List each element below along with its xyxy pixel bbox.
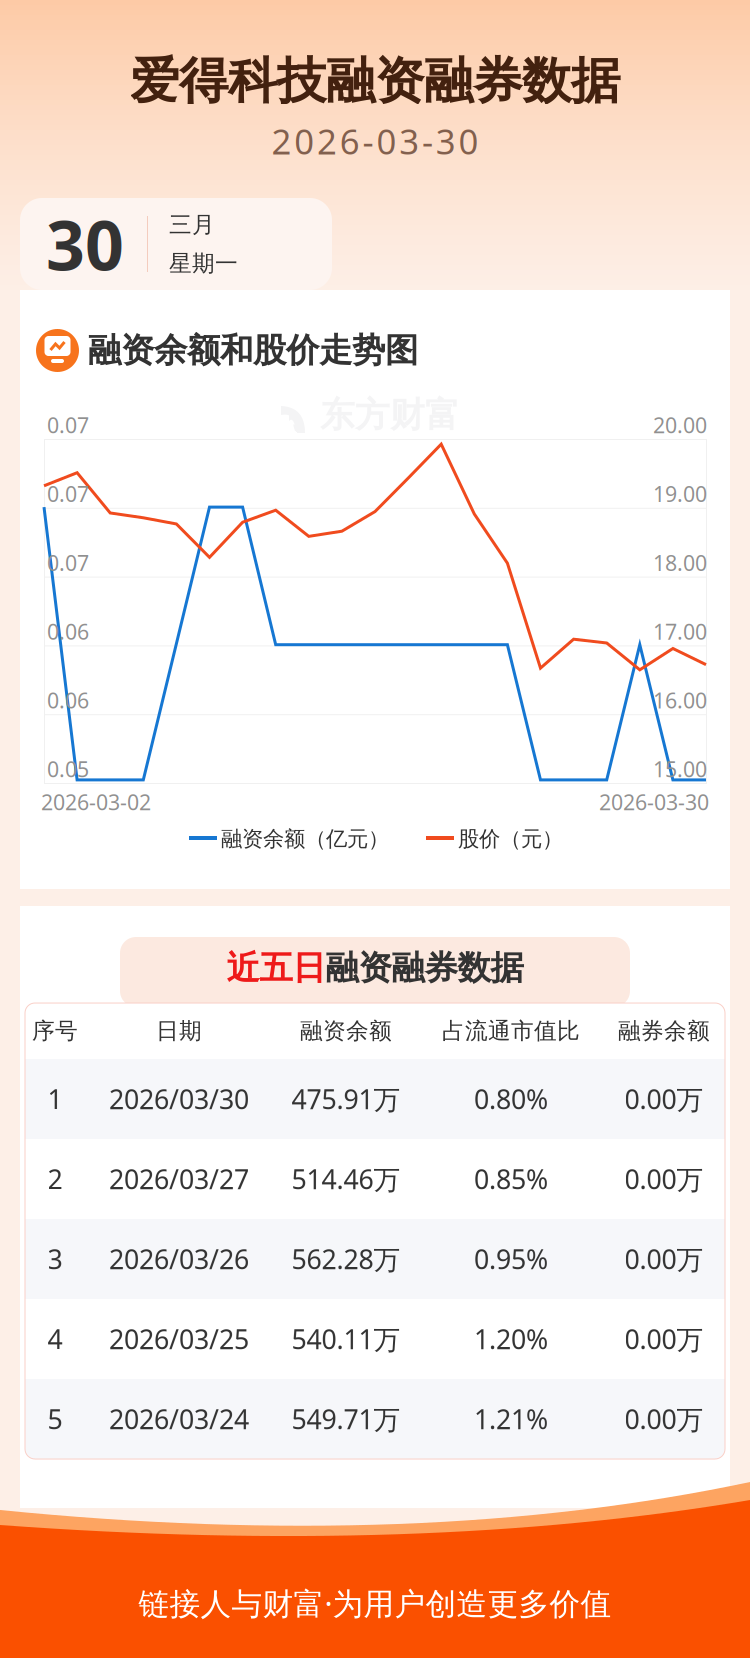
staticText: 19.00 [653,480,707,508]
staticText: 0.00万 [624,1401,703,1437]
staticText: 0.07 [47,411,89,439]
staticText: 540.11万 [291,1321,400,1357]
staticText: 2026/03/25 [109,1321,249,1357]
staticText: 0.00万 [624,1081,703,1117]
staticText: 20.00 [653,411,707,439]
staticText: 2026-03-30 [599,788,709,816]
staticText: 3 [47,1241,62,1277]
staticText: 2026/03/24 [109,1401,249,1437]
staticText: 融资余额 [300,1017,392,1045]
staticText: 0.00万 [624,1321,703,1357]
staticText: 星期一 [169,249,238,277]
staticText: 2026/03/27 [109,1161,249,1197]
staticText: 融资融券数据 [325,947,523,988]
staticText: 1.20% [474,1321,548,1357]
staticText: 2026-03-30 [271,118,479,164]
staticText: 0.05 [47,755,89,783]
staticText: 2 [47,1161,62,1197]
staticText: 融资余额和股价走势图 [88,330,418,371]
staticText: 4 [47,1321,62,1357]
staticText: 0.07 [47,548,89,577]
staticText: 融券余额 [618,1017,710,1045]
staticText: 15.00 [653,755,707,783]
staticText: 股价（元） [458,826,563,852]
staticText: 东方财富 [320,1226,460,1268]
staticText: 爱得科技融资融券数据 [130,51,620,111]
staticText: 2026/03/26 [109,1241,249,1277]
staticText: 三月 [169,211,215,238]
staticText: 占流通市值比 [442,1017,580,1045]
staticText: 0.00万 [624,1161,703,1197]
staticText: 0.95% [474,1241,548,1277]
staticText: 1 [47,1081,62,1117]
staticText: 475.91万 [291,1081,400,1117]
staticText: 2026/03/30 [109,1081,249,1117]
staticText: 0.85% [474,1161,548,1197]
staticText: 日期 [156,1017,202,1045]
staticText: 562.28万 [291,1241,400,1277]
staticText: 549.71万 [291,1401,400,1437]
staticText: 30 [46,199,124,289]
staticText: 17.00 [653,617,707,645]
staticText: 序号 [32,1017,78,1045]
staticText: 链接人与财富·为用户创造更多价值 [138,1583,611,1623]
staticText: 16.00 [653,686,707,714]
staticText: 1.21% [474,1401,548,1437]
staticText: 东方财富 [320,394,460,436]
staticText: 融资余额（亿元） [221,826,389,852]
staticText: 18.00 [653,548,707,577]
staticText: 近五日 [226,947,325,988]
staticText: 2026-03-02 [41,788,151,816]
staticText: 514.46万 [291,1161,400,1197]
staticText: 0.00万 [624,1241,703,1277]
staticText: 0.07 [47,480,89,508]
staticText: 5 [47,1401,62,1437]
button[interactable]: 30 [20,198,332,290]
staticText: 0.06 [47,617,89,645]
staticText: 0.80% [474,1081,548,1117]
staticText: 0.06 [47,686,89,714]
